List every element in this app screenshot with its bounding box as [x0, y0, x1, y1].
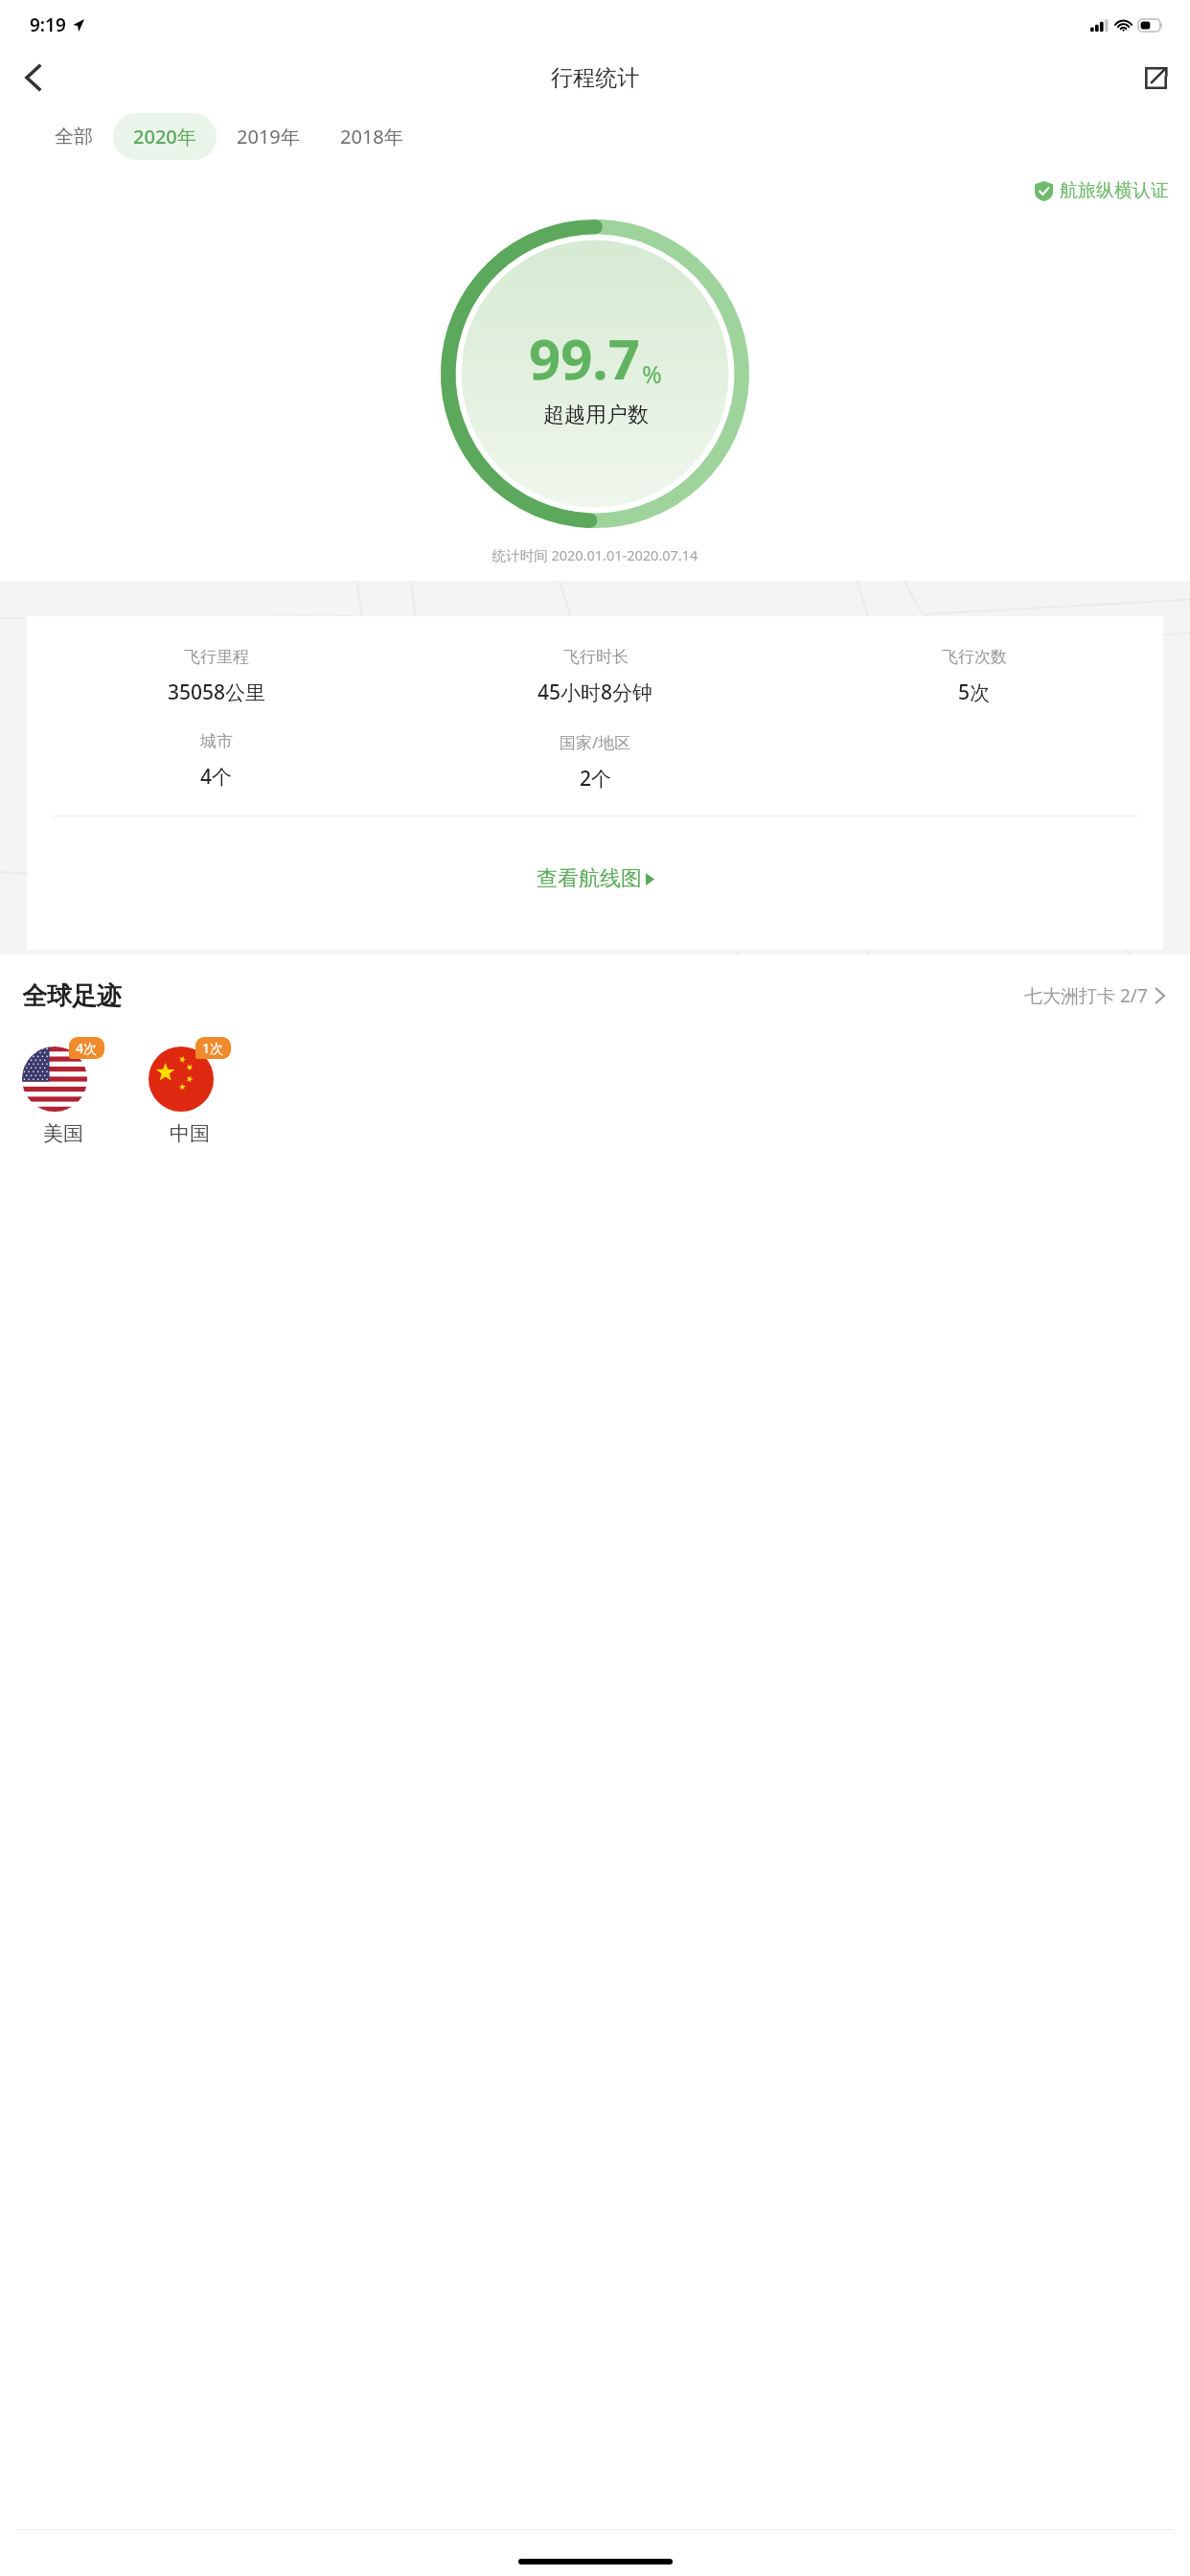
staticText: 5次 — [958, 678, 991, 706]
staticText: 2019年 — [237, 124, 300, 149]
button[interactable]: Share — [1133, 55, 1179, 101]
staticText: 9:19 — [30, 12, 66, 37]
staticText: 4个 — [200, 763, 233, 791]
staticText: 查看航线图 — [537, 865, 642, 892]
button[interactable]: 2020年 — [113, 113, 217, 160]
button[interactable]: 七大洲打卡 2/7 — [1020, 979, 1168, 1012]
staticText: 城市 — [200, 731, 233, 751]
staticText: 航旅纵横认证 — [1060, 179, 1169, 202]
staticText: 45小时8分钟 — [538, 678, 653, 706]
staticText: 35058公里 — [168, 678, 266, 706]
staticText: 中国 — [170, 1121, 210, 1146]
button[interactable]: 查看航线图 — [27, 856, 1163, 902]
staticText: 2018年 — [340, 124, 403, 149]
staticText: 飞行里程 — [184, 647, 249, 667]
staticText: 国家/地区 — [560, 731, 631, 753]
staticText: 2个 — [580, 765, 612, 793]
staticText: 行程统计 — [551, 64, 639, 92]
staticText: 全部 — [55, 125, 93, 149]
staticText: 飞行次数 — [942, 647, 1007, 667]
button[interactable]: Back — [8, 53, 57, 103]
staticText: 1次 — [202, 1039, 224, 1057]
staticText: 全球足迹 — [22, 980, 122, 1012]
button[interactable]: 2018年 — [320, 113, 423, 160]
button[interactable]: 2019年 — [217, 113, 320, 160]
staticText: 七大洲打卡 2/7 — [1024, 983, 1148, 1008]
staticText: 超越用户数 — [543, 402, 649, 428]
staticText: 4次 — [76, 1039, 98, 1057]
button[interactable]: 航旅纵横认证 — [1031, 175, 1173, 206]
staticText: % — [642, 357, 662, 390]
button[interactable]: 全部 — [34, 114, 113, 159]
staticText: 飞行时长 — [563, 647, 629, 667]
button[interactable]: 1次 — [149, 1037, 231, 1146]
button[interactable]: 4次 — [22, 1037, 104, 1146]
staticText: 美国 — [43, 1121, 83, 1146]
staticText: 统计时间 2020.01.01-2020.07.14 — [0, 545, 1190, 564]
staticText: 2020年 — [133, 124, 196, 149]
staticText: 99.7 — [529, 320, 640, 396]
